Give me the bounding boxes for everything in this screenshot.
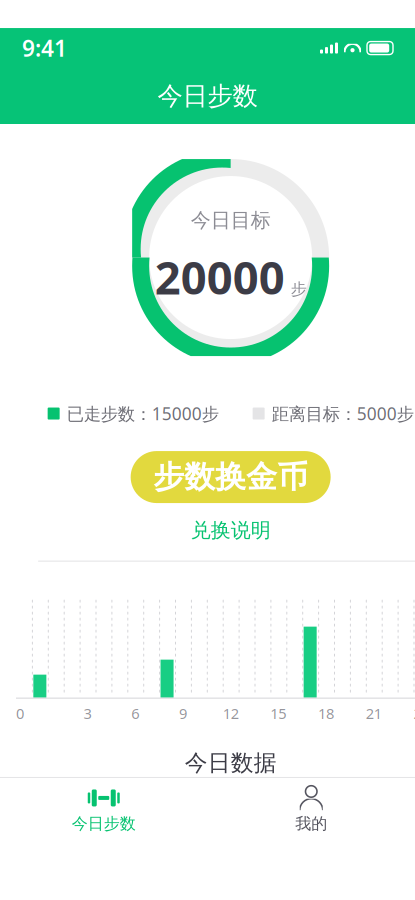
staticText: 已走步数：15000步 — [67, 402, 219, 425]
staticText: 今日步数 — [72, 814, 136, 834]
staticText: 20000 — [155, 247, 285, 307]
staticText: 兑换说明 — [191, 518, 271, 543]
staticText: 9 — [179, 704, 187, 723]
staticText: 3 — [84, 704, 92, 723]
staticText: 步数换金币 — [153, 458, 308, 496]
button[interactable]: 兑换说明 — [181, 515, 281, 546]
staticText: 18 — [318, 704, 334, 723]
staticText: 0 — [16, 704, 24, 723]
staticText: 21 — [366, 704, 382, 723]
staticText: 15 — [270, 704, 286, 723]
staticText: 我的 — [295, 814, 327, 834]
button[interactable]: 我的 — [207, 778, 415, 846]
staticText: 24 — [413, 704, 415, 723]
button[interactable]: 步数换金币 — [131, 451, 331, 503]
staticText: 9:41 — [22, 33, 67, 63]
staticText: 步 — [291, 279, 307, 299]
staticText: 今日步数 — [157, 80, 257, 112]
button[interactable]: 今日步数 — [0, 778, 207, 846]
staticText: 6 — [131, 704, 139, 723]
staticText: 12 — [223, 704, 239, 723]
staticText: 距离目标：5000步 — [272, 402, 414, 425]
staticText: 今日数据 — [185, 749, 277, 777]
staticText: 今日目标 — [191, 208, 271, 233]
